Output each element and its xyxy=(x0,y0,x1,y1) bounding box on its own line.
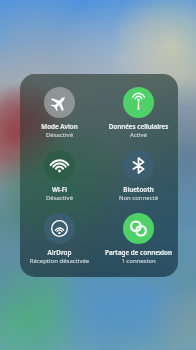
staticText: Données cellulaires xyxy=(102,122,175,131)
button[interactable]: Partage de connexion xyxy=(99,213,178,265)
staticText: Partage de connexion xyxy=(102,248,175,257)
button[interactable]: Mode Avion xyxy=(20,87,99,139)
button[interactable]: Wi-Fi xyxy=(20,150,99,202)
other: Mode Avion xyxy=(44,87,75,118)
staticText: Wi-Fi xyxy=(23,185,96,194)
other: AirDrop xyxy=(44,213,75,244)
staticText: Mode Avion xyxy=(23,122,96,131)
staticText: Désactivé xyxy=(23,131,96,139)
staticText: 1 connexion xyxy=(102,257,175,265)
other: Partage de connexion xyxy=(123,213,154,244)
button[interactable]: Bluetooth xyxy=(99,150,178,202)
staticText: AirDrop xyxy=(23,248,96,257)
staticText: Désactivé xyxy=(23,194,96,202)
button[interactable]: Données cellulaires xyxy=(99,87,178,139)
staticText: Bluetooth xyxy=(102,185,175,194)
staticText: Réception désactivée xyxy=(23,257,96,265)
other: Bluetooth xyxy=(123,150,154,181)
other: Données cellulaires xyxy=(123,87,154,118)
other: Wi-Fi xyxy=(44,150,75,181)
button[interactable]: AirDrop xyxy=(20,213,99,265)
staticText: Activé xyxy=(102,131,175,139)
staticText: Non connecté xyxy=(102,194,175,202)
